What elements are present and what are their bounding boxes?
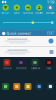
staticText: Quick connect — [6, 31, 30, 36]
button[interactable]: Messages — [22, 83, 34, 90]
button[interactable]: Apps — [45, 83, 56, 90]
staticText: Sound — [23, 11, 33, 15]
staticText: Photos — [16, 67, 26, 70]
staticText: Wi-Fi — [2, 11, 10, 15]
staticText: Share — [35, 11, 43, 15]
button[interactable]: Calc — [42, 59, 56, 70]
button[interactable]: Camera — [28, 59, 42, 70]
staticText: EDIT — [47, 32, 54, 35]
staticText: GPS — [14, 11, 20, 15]
button[interactable] — [0, 36, 56, 46]
staticText: Calc — [46, 67, 52, 70]
button[interactable]: Wi-Fi — [0, 4, 11, 15]
staticText: Clock — [3, 67, 11, 70]
button[interactable]: Sound — [22, 4, 34, 15]
button[interactable] — [0, 47, 56, 57]
button[interactable]: Photos — [14, 59, 28, 70]
button[interactable]: Quick connect — [2, 31, 30, 36]
button[interactable]: Contacts — [11, 83, 22, 90]
button[interactable]: Bluetooth — [34, 4, 45, 15]
staticText: Camera — [30, 67, 39, 70]
button[interactable]: Clock — [0, 59, 14, 70]
button[interactable]: EDIT — [47, 32, 54, 35]
button[interactable]: Phone — [0, 83, 11, 90]
staticText: Rotate — [46, 11, 55, 15]
button[interactable]: Internet — [34, 83, 45, 90]
button[interactable]: Rotate — [45, 4, 56, 15]
button[interactable]: Location — [11, 4, 22, 15]
staticText: 1:19 — [47, 0, 54, 4]
